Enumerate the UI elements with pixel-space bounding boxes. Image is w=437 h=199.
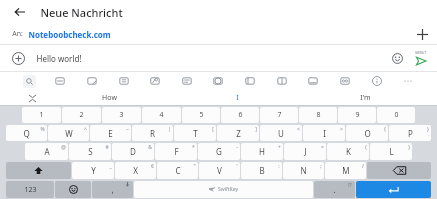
staticText: M <box>342 165 350 176</box>
button[interactable]: Emoji keyboard <box>55 181 91 198</box>
button[interactable]: X <box>115 162 156 179</box>
staticText: 5 <box>199 110 204 120</box>
button[interactable]: Search <box>20 72 38 90</box>
button[interactable]: Send <box>409 45 433 71</box>
staticText: ^ <box>84 126 87 133</box>
button[interactable]: O <box>346 125 388 141</box>
button[interactable]: Backspace <box>367 162 431 179</box>
button[interactable]: Noteboobcheck.com <box>28 29 111 40</box>
button[interactable]: I'm <box>301 90 429 105</box>
staticText: > <box>340 126 343 133</box>
staticText: , <box>111 184 114 195</box>
staticText: . <box>333 184 336 195</box>
button[interactable]: S <box>69 143 111 160</box>
button[interactable]: U <box>260 125 302 141</box>
button[interactable]: T <box>174 125 216 141</box>
button[interactable]: P <box>389 125 431 141</box>
button[interactable]: N <box>283 162 324 179</box>
button[interactable]: 7 <box>260 107 298 123</box>
button[interactable]: I <box>303 125 345 141</box>
staticText: 7 <box>277 110 282 120</box>
button[interactable]: C <box>157 162 198 179</box>
button[interactable]: 1 <box>22 107 61 123</box>
staticText: X <box>133 165 138 176</box>
button[interactable]: , <box>92 181 133 198</box>
staticText: I'm <box>360 93 371 103</box>
button[interactable]: 0 <box>377 107 415 123</box>
button[interactable]: More <box>399 72 417 90</box>
button[interactable]: Back <box>10 2 30 22</box>
button[interactable]: G <box>198 143 240 160</box>
button[interactable]: Split <box>241 72 259 90</box>
button[interactable]: Q <box>6 125 47 141</box>
staticText: € <box>151 163 154 170</box>
button[interactable]: J <box>284 143 326 160</box>
staticText: Hello world! <box>36 53 82 64</box>
button[interactable]: Layout <box>209 72 227 90</box>
button[interactable]: GIF <box>51 72 69 90</box>
button[interactable]: I <box>173 90 301 105</box>
staticText: T <box>193 128 198 139</box>
staticText: B <box>259 165 265 176</box>
button[interactable]: 123 <box>6 181 54 198</box>
button[interactable]: Enter <box>356 181 431 198</box>
button[interactable]: M <box>325 162 366 179</box>
staticText: I <box>236 93 239 103</box>
button[interactable]: 3 <box>102 107 141 123</box>
button[interactable]: Clipboard <box>115 72 133 90</box>
button[interactable]: . <box>314 181 355 198</box>
staticText: ~ <box>126 126 129 133</box>
staticText: : <box>278 163 280 170</box>
staticText: G <box>216 146 222 157</box>
button[interactable]: Shift <box>6 162 71 179</box>
staticText: { <box>384 126 386 133</box>
button[interactable]: 5 <box>182 107 220 123</box>
button[interactable]: L <box>370 143 412 160</box>
button[interactable]: W <box>48 125 89 141</box>
button[interactable]: Emoji <box>388 49 406 67</box>
staticText: Q <box>23 128 30 139</box>
staticText: 3 <box>119 110 124 120</box>
button[interactable]: How <box>45 90 173 105</box>
button[interactable]: A <box>25 143 68 160</box>
button[interactable]: 8 <box>299 107 337 123</box>
button[interactable]: Incognito <box>304 72 322 90</box>
button[interactable]: Add recipient <box>413 25 431 43</box>
button[interactable]: 9 <box>338 107 376 123</box>
button[interactable]: Y <box>72 162 114 179</box>
button[interactable]: Desktop <box>273 72 291 90</box>
button[interactable]: D <box>112 143 154 160</box>
staticText: * <box>192 144 195 151</box>
button[interactable]: K <box>327 143 369 160</box>
button[interactable]: Sticker <box>83 72 101 90</box>
staticText: SMS/1 <box>415 50 427 55</box>
button[interactable]: Translate <box>146 72 164 90</box>
staticText: - <box>236 144 238 151</box>
button[interactable]: Expand <box>26 92 38 104</box>
button[interactable]: 2 <box>62 107 101 123</box>
staticText: D <box>130 146 136 157</box>
staticText: 4 <box>159 110 164 120</box>
button[interactable]: News <box>178 72 196 90</box>
staticText: SwiftKey <box>218 186 238 193</box>
button[interactable]: Hello world! <box>36 45 388 71</box>
button[interactable]: Info <box>368 72 386 90</box>
button[interactable]: E <box>90 125 131 141</box>
button[interactable]: B <box>241 162 282 179</box>
staticText: P <box>408 128 413 139</box>
button[interactable]: 4 <box>142 107 181 123</box>
staticText: 2 <box>79 110 84 120</box>
button[interactable]: Space <box>134 181 313 198</box>
button[interactable]: Theme <box>336 72 354 90</box>
button[interactable]: 6 <box>221 107 259 123</box>
staticText: O <box>364 128 371 139</box>
button[interactable]: H <box>241 143 283 160</box>
button[interactable]: Attach <box>8 48 28 68</box>
button[interactable]: F <box>155 143 197 160</box>
staticText: Neue Nachricht <box>40 5 123 20</box>
button[interactable]: Z <box>217 125 259 141</box>
button[interactable]: R <box>132 125 173 141</box>
staticText: E <box>108 128 113 139</box>
staticText: A <box>44 146 50 157</box>
button[interactable]: V <box>199 162 240 179</box>
